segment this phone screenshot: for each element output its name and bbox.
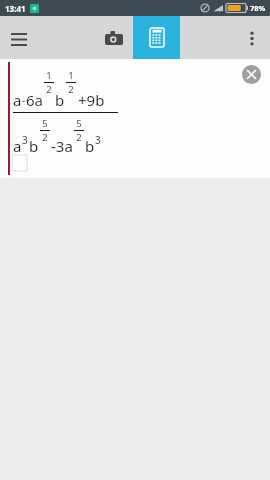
button[interactable]: More options bbox=[238, 24, 266, 52]
button[interactable]: Calculator keypad bbox=[133, 16, 180, 59]
staticText: +9b bbox=[78, 90, 105, 110]
staticText: 1 bbox=[46, 69, 52, 82]
staticText: 3 bbox=[22, 133, 28, 147]
staticText: 3 bbox=[95, 133, 101, 147]
staticText: 5 bbox=[42, 117, 48, 130]
button[interactable]: Scan with camera bbox=[100, 24, 128, 52]
staticText: 2 bbox=[46, 83, 52, 96]
staticText: b bbox=[85, 136, 95, 156]
staticText: 2 bbox=[42, 131, 48, 144]
staticText: a bbox=[13, 90, 22, 110]
staticText: -3a bbox=[51, 136, 73, 156]
staticText: 5 bbox=[76, 117, 82, 130]
staticText: 78% bbox=[250, 3, 266, 13]
staticText: 2 bbox=[68, 83, 74, 96]
staticText: a bbox=[13, 136, 22, 156]
staticText: 2 bbox=[76, 131, 82, 144]
staticText: 1 bbox=[68, 69, 74, 82]
staticText: 6a bbox=[26, 90, 43, 110]
button[interactable]: a bbox=[13, 64, 118, 158]
staticText: b bbox=[29, 136, 39, 156]
staticText: b bbox=[55, 90, 65, 110]
button[interactable]: Open navigation drawer bbox=[6, 25, 32, 51]
button[interactable]: Close expression bbox=[242, 65, 261, 84]
staticText: - bbox=[22, 93, 26, 107]
staticText: 13:41 bbox=[5, 3, 26, 14]
